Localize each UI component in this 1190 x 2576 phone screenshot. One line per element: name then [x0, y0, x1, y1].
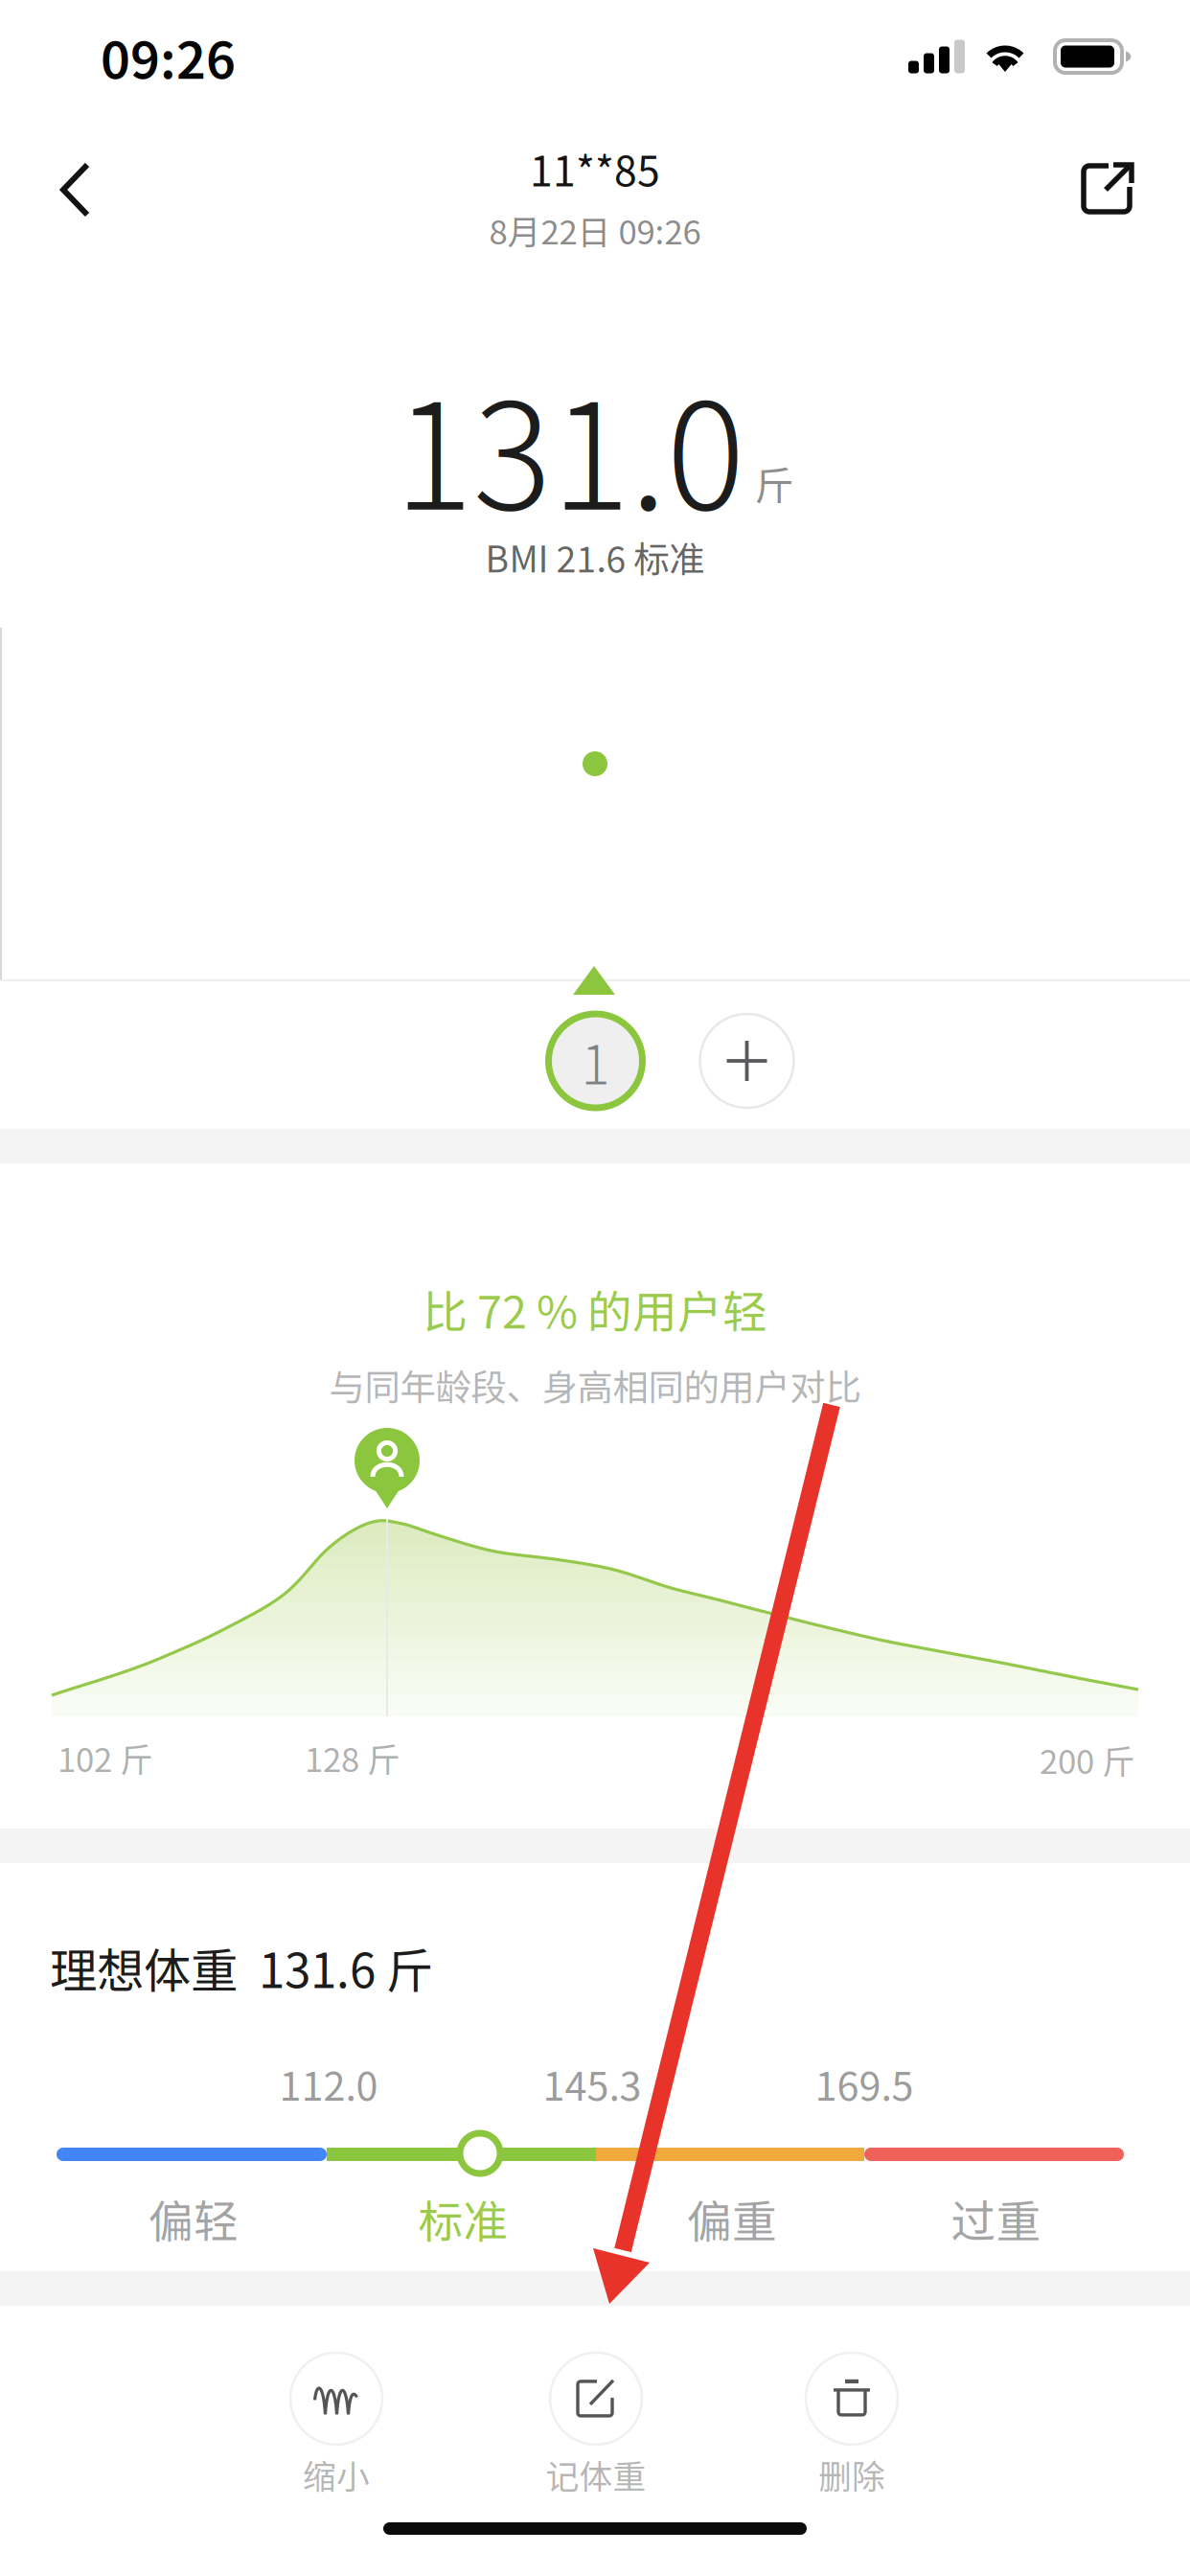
- staticText: 145.3: [543, 2055, 641, 2112]
- staticText: 记体重: [546, 2450, 646, 2498]
- staticText: BMI 21.6 标准: [485, 531, 705, 583]
- staticText: 11**85: [530, 139, 660, 198]
- staticText: 112.0: [279, 2055, 378, 2112]
- staticText: 标准: [418, 2186, 508, 2251]
- staticText: 09:26: [101, 20, 236, 94]
- staticText: 102 斤: [57, 1734, 153, 1782]
- staticText: 缩小: [303, 2450, 370, 2498]
- staticText: 1: [581, 1022, 610, 1100]
- staticText: 128 斤: [305, 1734, 400, 1782]
- staticText: 200 斤: [1040, 1735, 1135, 1784]
- button[interactable]: Delete: [742, 2353, 962, 2498]
- button[interactable]: Record weight: [486, 2353, 706, 2498]
- staticText: 斤: [755, 454, 794, 512]
- staticText: 偏重: [687, 2186, 777, 2251]
- staticText: 偏轻: [149, 2186, 239, 2251]
- button[interactable]: Zoom out: [226, 2353, 446, 2498]
- staticText: 169.5: [815, 2055, 914, 2112]
- button[interactable]: Back: [18, 134, 133, 245]
- staticText: 比 72 % 的用户轻: [423, 1277, 767, 1341]
- staticText: 8月22日 09:26: [489, 206, 701, 254]
- staticText: 删除: [818, 2450, 885, 2498]
- staticText: 与同年龄段、身高相同的用户对比: [329, 1359, 861, 1411]
- button[interactable]: Share: [1050, 136, 1165, 241]
- button[interactable]: Add measurement: [700, 1014, 794, 1108]
- button[interactable]: Measurement 1: [549, 1014, 642, 1108]
- staticText: 过重: [951, 2186, 1041, 2251]
- staticText: 理想体重 131.6 斤: [50, 1933, 433, 2002]
- staticText: 131.0: [394, 339, 745, 552]
